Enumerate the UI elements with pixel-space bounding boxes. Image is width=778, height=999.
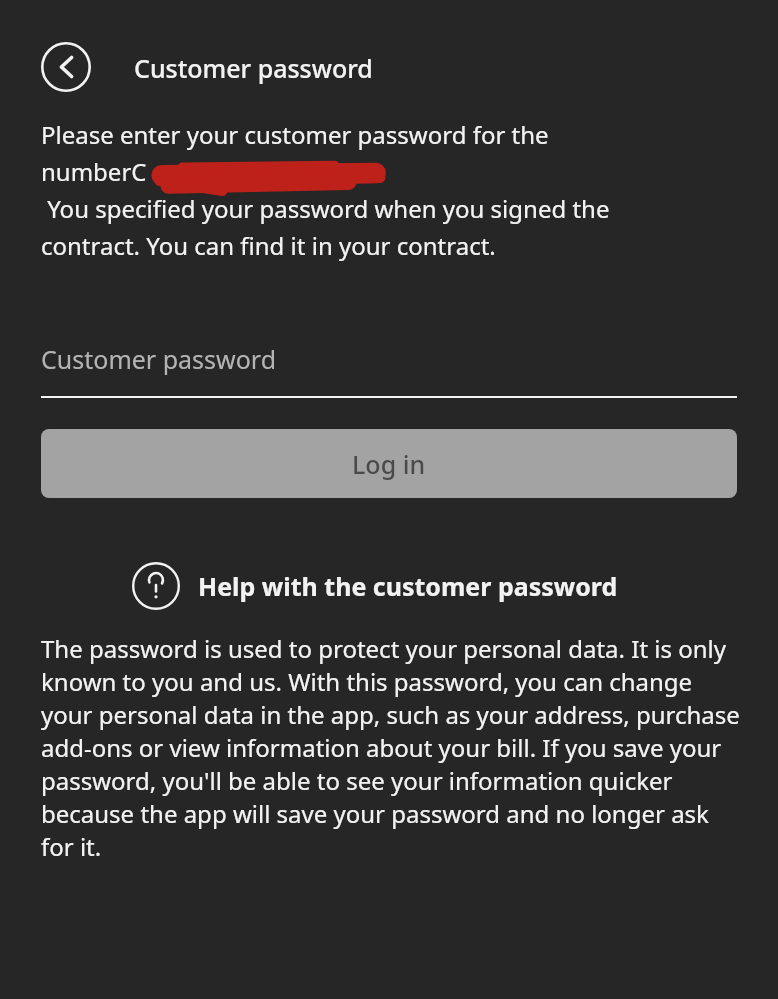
button[interactable]: Log in bbox=[41, 429, 737, 498]
button[interactable]: Help with the customer password bbox=[132, 562, 738, 610]
button[interactable]: Customer password bbox=[41, 342, 737, 398]
staticText: Log in bbox=[352, 447, 426, 481]
staticText: Help with the customer password bbox=[198, 569, 618, 603]
button[interactable]: Back bbox=[41, 42, 91, 92]
staticText: Customer password bbox=[134, 51, 373, 85]
staticText: Customer password bbox=[41, 342, 277, 376]
staticText: The password is used to protect your per… bbox=[41, 632, 740, 863]
staticText: Please enter your customer password for … bbox=[41, 118, 610, 262]
